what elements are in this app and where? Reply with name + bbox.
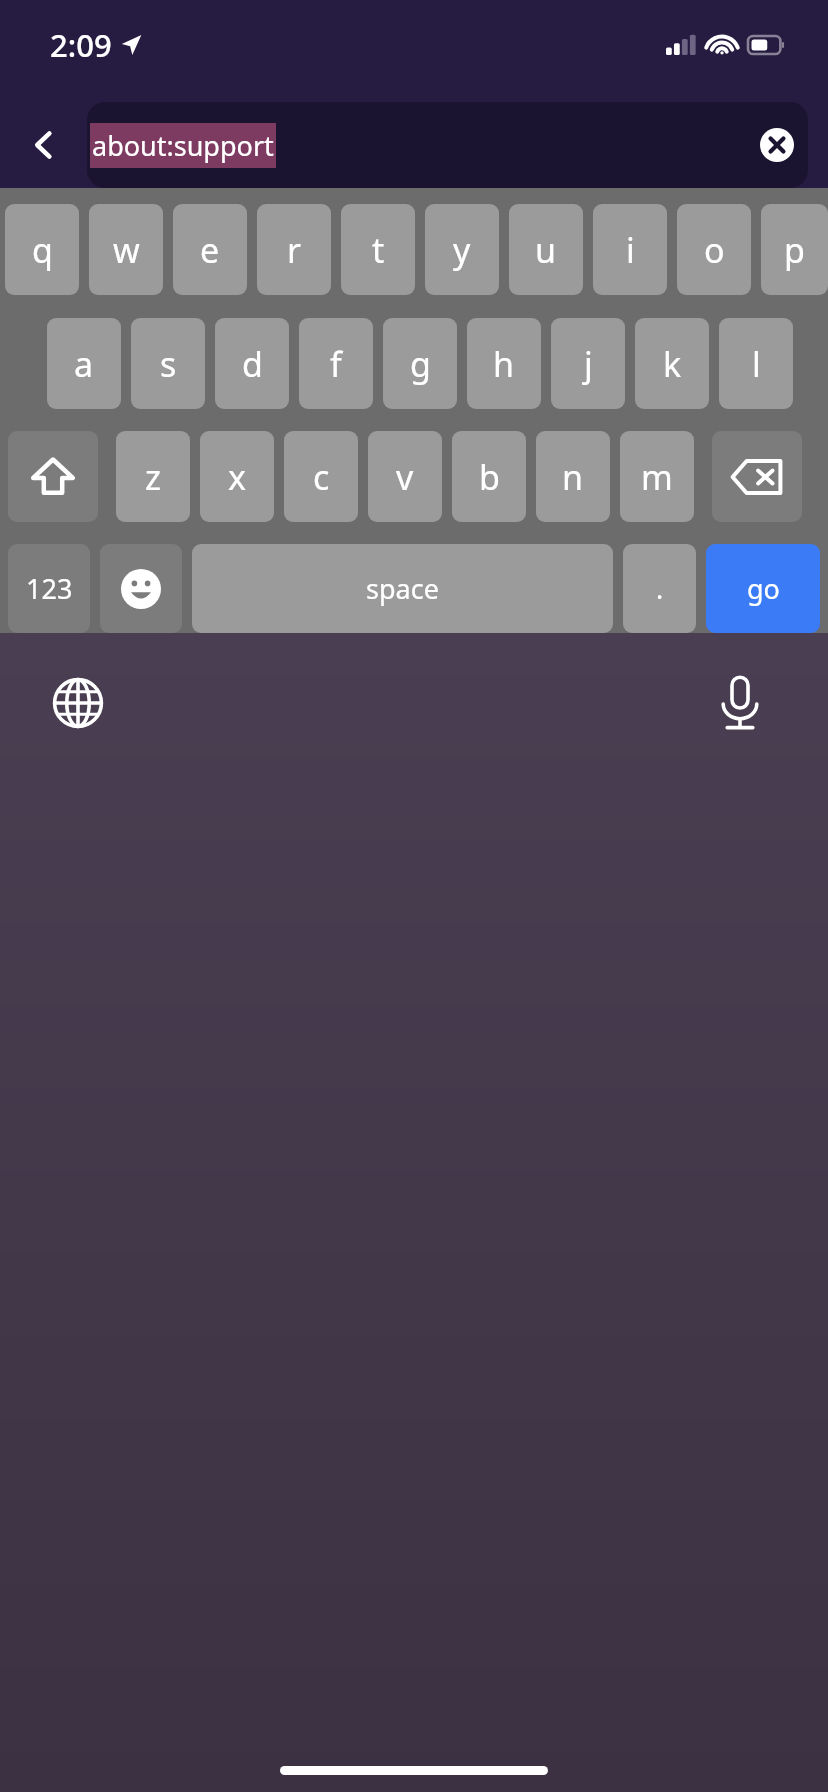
button[interactable]: Clear bbox=[760, 128, 794, 162]
staticText: go bbox=[747, 570, 780, 607]
button[interactable]: x bbox=[200, 431, 274, 522]
button[interactable]: d bbox=[215, 318, 289, 409]
staticText: c bbox=[313, 454, 330, 500]
button[interactable]: Back bbox=[0, 102, 87, 188]
button[interactable]: i bbox=[593, 204, 667, 295]
staticText: u bbox=[535, 227, 557, 273]
button[interactable]: q bbox=[5, 204, 79, 295]
button[interactable]: j bbox=[551, 318, 625, 409]
button[interactable]: f bbox=[299, 318, 373, 409]
staticText: o bbox=[704, 227, 725, 273]
staticText: x bbox=[228, 454, 246, 500]
button[interactable]: n bbox=[536, 431, 610, 522]
staticText: 2:09 bbox=[50, 24, 112, 66]
button[interactable]: o bbox=[677, 204, 751, 295]
button[interactable]: l bbox=[719, 318, 793, 409]
button[interactable]: k bbox=[635, 318, 709, 409]
staticText: z bbox=[145, 454, 161, 500]
button[interactable]: a bbox=[47, 318, 121, 409]
button[interactable]: y bbox=[425, 204, 499, 295]
button[interactable]: go bbox=[706, 544, 820, 633]
button[interactable]: 123 bbox=[8, 544, 90, 633]
staticText: l bbox=[752, 341, 761, 387]
staticText: p bbox=[784, 227, 805, 273]
button[interactable]: e bbox=[173, 204, 247, 295]
staticText: g bbox=[410, 341, 431, 387]
staticText: w bbox=[113, 227, 140, 273]
staticText: n bbox=[562, 454, 584, 500]
staticText: about:support bbox=[92, 127, 274, 164]
button[interactable]: c bbox=[284, 431, 358, 522]
staticText: i bbox=[626, 227, 635, 273]
staticText: b bbox=[479, 454, 500, 500]
button[interactable]: u bbox=[509, 204, 583, 295]
staticText: f bbox=[330, 341, 342, 387]
button[interactable]: Backspace bbox=[712, 431, 802, 522]
staticText: 123 bbox=[26, 570, 73, 607]
staticText: space bbox=[366, 570, 439, 607]
button[interactable]: z bbox=[116, 431, 190, 522]
button[interactable]: Emoji bbox=[100, 544, 182, 633]
staticText: y bbox=[453, 227, 471, 273]
button[interactable]: s bbox=[131, 318, 205, 409]
staticText: j bbox=[584, 341, 593, 387]
staticText: t bbox=[372, 227, 385, 273]
staticText: s bbox=[160, 341, 177, 387]
staticText: k bbox=[663, 341, 682, 387]
staticText: h bbox=[493, 341, 515, 387]
staticText: q bbox=[32, 227, 53, 273]
button[interactable]: h bbox=[467, 318, 541, 409]
button[interactable]: space bbox=[192, 544, 613, 633]
button[interactable]: v bbox=[368, 431, 442, 522]
button[interactable]: . bbox=[623, 544, 696, 633]
button[interactable]: Change keyboard bbox=[50, 675, 106, 731]
staticText: r bbox=[287, 227, 302, 273]
button[interactable]: g bbox=[383, 318, 457, 409]
staticText: . bbox=[656, 570, 664, 607]
staticText: a bbox=[74, 341, 94, 387]
button[interactable]: p bbox=[761, 204, 828, 295]
staticText: m bbox=[641, 454, 673, 500]
button[interactable]: about:support bbox=[87, 102, 808, 188]
button[interactable]: w bbox=[89, 204, 163, 295]
button[interactable]: b bbox=[452, 431, 526, 522]
button[interactable]: Dictate bbox=[712, 675, 768, 731]
staticText: d bbox=[242, 341, 263, 387]
staticText: e bbox=[200, 227, 220, 273]
button[interactable]: r bbox=[257, 204, 331, 295]
button[interactable]: m bbox=[620, 431, 694, 522]
staticText: v bbox=[396, 454, 414, 500]
button[interactable]: t bbox=[341, 204, 415, 295]
button[interactable]: Shift bbox=[8, 431, 98, 522]
